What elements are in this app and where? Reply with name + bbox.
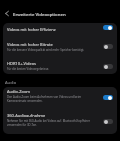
staticText: 360-Audioaufnahme [7, 113, 46, 118]
staticText: Den Audio-Zoom beim Aufnehmen von Videos… [7, 95, 101, 103]
button[interactable]: Videos mit hoher Bitrate [3, 37, 117, 56]
button[interactable]: HDR10+-Videos [3, 56, 117, 74]
staticText: Videos mit hoher Bitrate [7, 42, 53, 47]
staticText: Erweiterte Videooptionen [13, 11, 66, 17]
staticText: Für die bessere Videoqualität wird mehr … [7, 48, 85, 52]
button[interactable]: Audio-Zoom [3, 87, 117, 109]
staticText: Nehmen Sie mit 360-Audio bei Videos auf.… [7, 119, 101, 127]
staticText: Audio [5, 80, 17, 85]
button[interactable]: Toggle [103, 119, 113, 124]
button[interactable]: Toggle [103, 64, 113, 69]
button[interactable]: Toggle [103, 44, 113, 49]
button[interactable]: Back [0, 8, 12, 19]
button[interactable]: 360-Audioaufnahme [3, 109, 117, 134]
staticText: Für die besten Videoergebnisse. [7, 67, 50, 71]
staticText: HDR10+-Videos [7, 61, 37, 66]
staticText: Videos mit hoher Effizienz [7, 27, 56, 32]
button[interactable]: Toggle [103, 25, 113, 30]
button[interactable]: Videos mit hoher Effizienz [3, 23, 117, 37]
button[interactable]: Toggle [103, 95, 113, 100]
staticText: Audio-Zoom [7, 89, 31, 94]
